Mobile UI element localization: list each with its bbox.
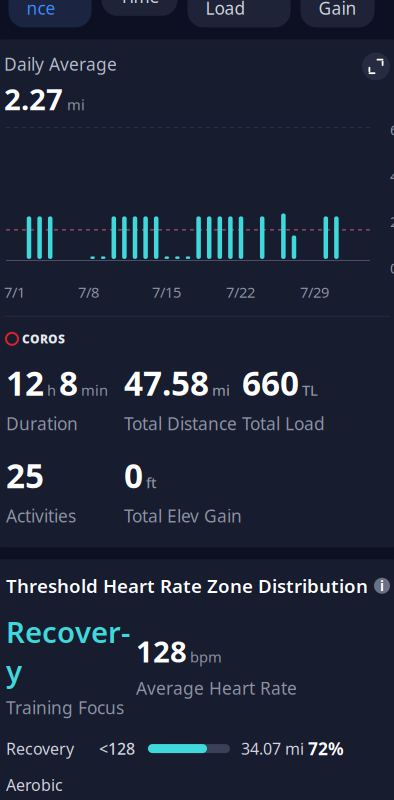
staticText: 72% [308,737,344,760]
staticText: Time [119,0,159,8]
staticText: Total Distance [124,412,237,435]
staticText: Activities [6,504,76,527]
staticText: 8 [59,361,78,405]
staticText: Average Heart Rate [136,677,297,700]
staticText: 660 [242,361,299,405]
staticText: Total Load [242,412,325,435]
staticText: Training Load [205,0,272,19]
staticText: Training Focus [6,696,124,719]
staticText: 7/1 [4,282,25,302]
staticText: Duration [6,412,78,435]
staticText: Distance [26,0,73,19]
staticText: TL [302,380,318,400]
staticText: min [81,380,108,400]
button[interactable]: Distance [8,0,91,27]
staticText: 7/29 [300,282,329,302]
staticText: ft [146,473,157,492]
staticText: 6 [390,120,394,139]
button[interactable]: Training Load [187,0,290,27]
button[interactable]: About heart rate zones [374,578,390,594]
staticText: 34.07 mi [241,738,304,759]
staticText: 2.27 [4,79,63,118]
staticText: i [380,577,384,595]
staticText: Aerobic [6,774,63,795]
staticText: h [47,380,56,400]
staticText: 7/15 [152,282,181,302]
staticText: Daily Average [4,52,117,75]
staticText: Total Elev Gain [124,504,242,527]
staticText: Elev Gain [318,0,356,19]
staticText: <128 [99,738,135,759]
staticText: 128 [136,632,187,671]
staticText: 12 [6,361,44,405]
staticText: 7/8 [78,282,99,302]
staticText: 7/22 [226,282,255,302]
staticText: COROS [22,331,65,347]
staticText: Threshold Heart Rate Zone Distribution [6,573,368,598]
staticText: Recovery [6,612,130,690]
staticText: 25 [6,453,44,497]
staticText: 47.58 [124,361,209,405]
staticText: Recovery [6,738,74,759]
button[interactable]: Time [101,0,177,16]
staticText: mi [67,95,85,114]
button[interactable]: Expand chart [362,52,390,80]
button[interactable]: Elev Gain [300,0,374,27]
staticText: 0 [124,453,143,497]
staticText: 4 [390,166,394,186]
staticText: 0 [390,258,394,278]
staticText: mi [212,380,230,400]
staticText: 2 [390,212,394,231]
staticText: bpm [190,647,222,667]
